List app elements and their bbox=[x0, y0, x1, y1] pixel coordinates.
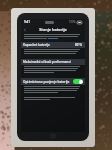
staticText: Stanje baterije bbox=[39, 27, 67, 32]
button[interactable]: Optimizirano punjenje baterije bbox=[21, 78, 85, 85]
button[interactable]: Optimizirano punjenje uključeno bbox=[73, 79, 83, 84]
button[interactable]: Maksimalni učinak performansi bbox=[21, 59, 85, 65]
staticText: 100% bbox=[69, 20, 76, 24]
staticText: Kapacitet baterije bbox=[23, 43, 50, 47]
staticText: 9:41 bbox=[24, 20, 30, 24]
button[interactable]: Natrag bbox=[21, 26, 28, 33]
staticText: 89 % bbox=[75, 43, 83, 47]
staticText: Optimizirano punjenje baterije bbox=[23, 80, 70, 84]
button[interactable]: Kapacitet baterije bbox=[21, 42, 85, 48]
staticText: Maksimalni učinak performansi bbox=[23, 60, 71, 64]
